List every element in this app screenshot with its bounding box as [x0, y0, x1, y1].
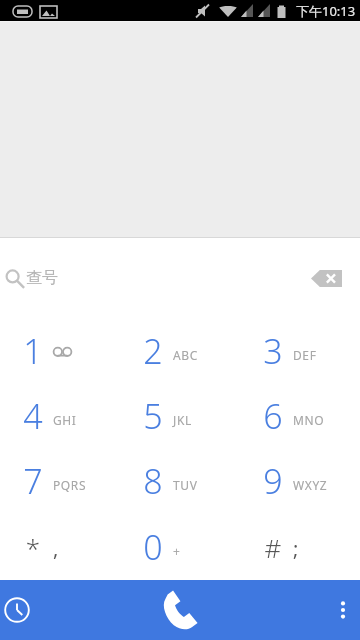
staticText: 8	[140, 458, 166, 504]
staticText: 4	[20, 393, 46, 439]
staticText: 1	[20, 328, 46, 374]
button[interactable]: More options	[240, 580, 360, 640]
button[interactable]: *	[0, 514, 120, 580]
staticText: PQRS	[53, 477, 87, 493]
button[interactable]: 5	[120, 383, 240, 448]
button[interactable]: Backspace	[306, 263, 346, 293]
staticText: JKL	[173, 412, 192, 428]
button[interactable]: 3	[240, 318, 360, 383]
button[interactable]: Call history	[0, 580, 120, 640]
staticText: ABC	[173, 347, 198, 363]
button[interactable]: 0	[120, 514, 240, 580]
button[interactable]: #	[240, 514, 360, 580]
button[interactable]: 1	[0, 318, 120, 383]
staticText: DEF	[293, 347, 317, 363]
button[interactable]: 4	[0, 383, 120, 448]
button[interactable]: 9	[240, 448, 360, 514]
staticText: +	[173, 543, 181, 559]
staticText: 7	[20, 458, 46, 504]
staticText: *	[20, 530, 46, 565]
button[interactable]: 8	[120, 448, 240, 514]
staticText: ;	[293, 535, 299, 562]
staticText: GHI	[53, 412, 77, 428]
button[interactable]: 6	[240, 383, 360, 448]
staticText: 9	[260, 458, 286, 504]
button[interactable]: 查号	[0, 238, 360, 318]
staticText: MNO	[293, 412, 325, 428]
staticText: TUV	[173, 477, 198, 493]
button[interactable]: Call	[120, 580, 240, 640]
staticText: 下午10:13	[296, 2, 356, 20]
staticText: 5	[140, 393, 166, 439]
staticText: #	[260, 530, 286, 565]
staticText: 6	[260, 393, 286, 439]
staticText: 2	[140, 328, 166, 374]
staticText: 3	[260, 328, 286, 374]
staticText: ,	[53, 535, 59, 562]
staticText: 0	[140, 524, 166, 570]
staticText: WXYZ	[293, 477, 328, 493]
button[interactable]: 7	[0, 448, 120, 514]
staticText: 查号	[26, 268, 58, 288]
button[interactable]: 2	[120, 318, 240, 383]
